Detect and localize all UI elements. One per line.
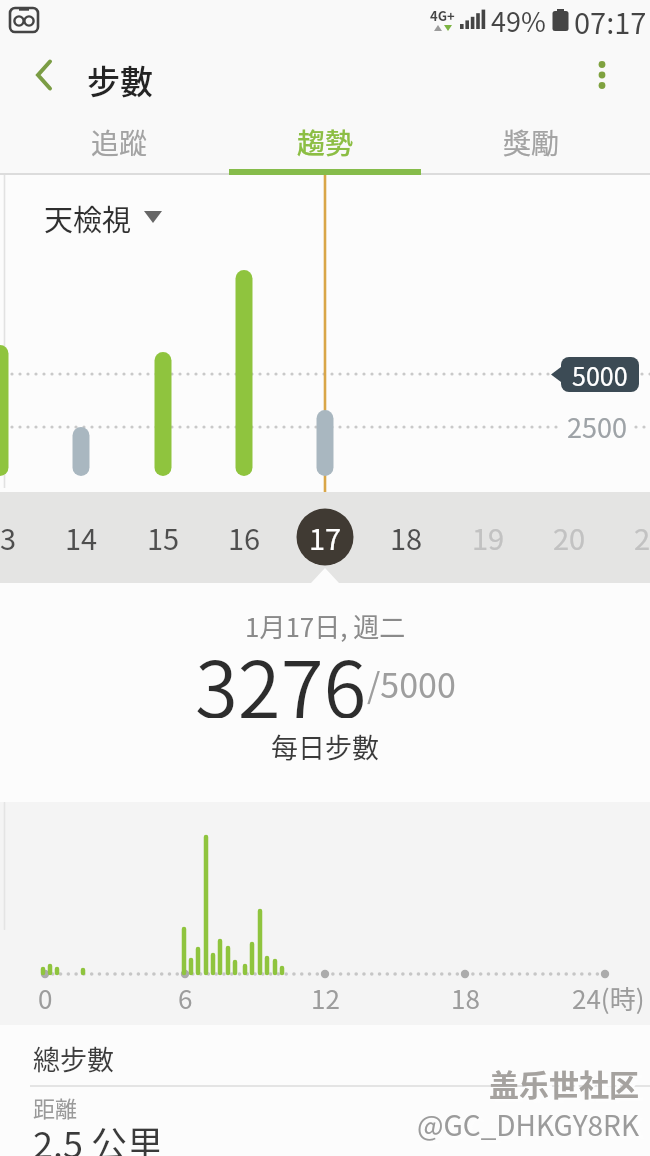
staticText: 19 <box>472 516 505 558</box>
button[interactable]: 17 <box>285 507 365 567</box>
button[interactable] <box>22 53 66 97</box>
staticText: 20 <box>553 516 586 558</box>
staticText: 07:17 <box>574 0 647 40</box>
staticText: 15 <box>147 516 180 558</box>
button[interactable]: 14 <box>41 507 121 567</box>
staticText: 18 <box>390 516 423 558</box>
button[interactable]: 18 <box>366 507 446 567</box>
button[interactable]: 距離 <box>0 1087 650 1156</box>
staticText: 每日步數 <box>271 727 379 766</box>
staticText: 21 <box>634 516 650 558</box>
staticText: 總步數 <box>33 1039 114 1078</box>
staticText: 16 <box>228 516 261 558</box>
button[interactable]: 13 <box>0 507 45 567</box>
staticText: 17 <box>309 516 342 558</box>
staticText: 距離 <box>33 1091 78 1123</box>
staticText: 步數 <box>87 56 153 104</box>
staticText: 12 <box>311 979 340 1017</box>
staticText: 2.5 公里 <box>33 1116 164 1156</box>
staticText: 1月17日, 週二 <box>245 607 406 645</box>
staticText: 趨勢 <box>297 122 354 163</box>
staticText: /5000 <box>367 659 456 708</box>
button[interactable]: 追蹤 <box>16 110 222 175</box>
staticText: 追蹤 <box>91 122 148 163</box>
staticText: 3276 <box>195 628 367 718</box>
staticText: 5000 <box>572 357 628 393</box>
staticText: 24(時) <box>572 979 645 1017</box>
button[interactable]: 趨勢 <box>222 110 428 175</box>
staticText: @GC_DHKGY8RK <box>422 1107 644 1148</box>
staticText: 18 <box>451 979 480 1017</box>
staticText: 盖乐世社区 <box>494 1064 644 1107</box>
staticText: 天檢視 <box>44 197 132 237</box>
staticText: 0 <box>38 979 53 1017</box>
button[interactable] <box>580 53 624 97</box>
staticText: 4G+ <box>430 6 455 25</box>
button[interactable]: 天檢視 <box>44 197 162 237</box>
staticText: 13 <box>0 516 17 558</box>
staticText: @GC_DHKGY8RK <box>417 1104 639 1145</box>
staticText: 盖乐世社区 <box>489 1061 639 1104</box>
button[interactable]: 16 <box>204 507 284 567</box>
button[interactable]: 獎勵 <box>428 110 634 175</box>
staticText: 2500 <box>567 407 627 446</box>
staticText: 6 <box>178 979 193 1017</box>
button[interactable]: 15 <box>123 507 203 567</box>
button[interactable]: 總步數 <box>0 1025 650 1085</box>
staticText: 14 <box>65 516 98 558</box>
staticText: 獎勵 <box>503 122 560 163</box>
staticText: 49% <box>491 1 546 40</box>
